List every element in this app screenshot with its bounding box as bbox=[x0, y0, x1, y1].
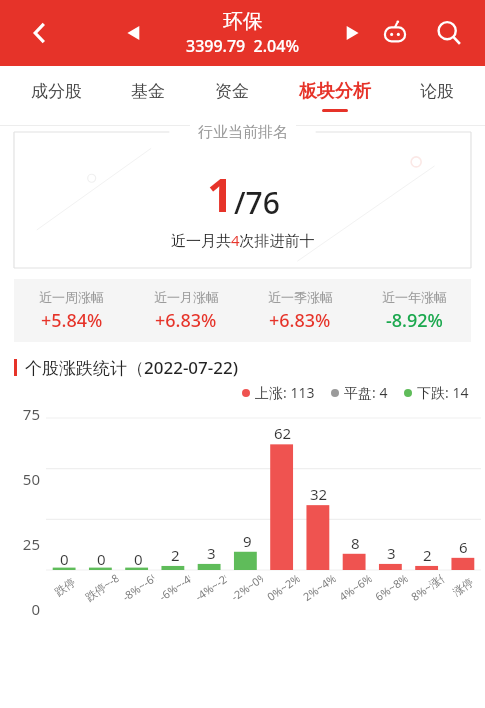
staticText: -2%~0% bbox=[228, 571, 266, 604]
staticText: 个股涨跌统计（2022-07-22) bbox=[25, 356, 239, 379]
staticText: 9 bbox=[243, 531, 252, 551]
staticText: 0 bbox=[6, 599, 40, 619]
staticText: 3399.79 2.04% bbox=[186, 35, 300, 57]
button[interactable]: 近一年涨幅 bbox=[357, 289, 471, 333]
staticText: 32 bbox=[310, 484, 328, 504]
staticText: 2 bbox=[171, 545, 180, 565]
staticText: 环保 bbox=[223, 9, 263, 34]
staticText: 涨停 bbox=[450, 575, 476, 599]
staticText: 62 bbox=[274, 423, 292, 443]
staticText: 跌停~-8% bbox=[82, 571, 121, 604]
button[interactable]: 近一季涨幅 bbox=[243, 289, 357, 333]
staticText: 2 bbox=[423, 545, 432, 565]
staticText: 0%~2% bbox=[264, 571, 302, 604]
staticText: 板块分析 bbox=[299, 80, 371, 103]
staticText: 近一月共4次排进前十 bbox=[171, 230, 315, 250]
staticText: 上涨: 113 bbox=[255, 383, 315, 402]
staticText: -6%~-4% bbox=[156, 571, 194, 604]
staticText: 平盘: 4 bbox=[344, 383, 388, 402]
staticText: -8.92% bbox=[386, 308, 443, 333]
staticText: 近一月涨幅 bbox=[154, 289, 219, 305]
staticText: 0 bbox=[134, 549, 143, 569]
button[interactable]: 近一周涨幅 bbox=[14, 289, 129, 333]
staticText: -8%~-6% bbox=[119, 571, 158, 604]
staticText: 下跌: 14 bbox=[417, 383, 469, 402]
staticText: 1 bbox=[207, 163, 234, 226]
staticText: +5.84% bbox=[41, 308, 103, 333]
button[interactable]: Previous sector bbox=[113, 13, 153, 53]
staticText: +6.83% bbox=[155, 308, 217, 333]
staticText: +6.83% bbox=[269, 308, 331, 333]
staticText: 成分股 bbox=[31, 81, 82, 102]
staticText: 资金 bbox=[215, 81, 249, 102]
button[interactable]: Next sector bbox=[333, 13, 373, 53]
staticText: 50 bbox=[6, 469, 40, 489]
staticText: 2%~4% bbox=[300, 571, 338, 604]
staticText: 6 bbox=[459, 537, 468, 557]
staticText: 4%~6% bbox=[336, 571, 374, 604]
staticText: 论股 bbox=[420, 81, 454, 102]
staticText: 3 bbox=[387, 543, 396, 563]
staticText: -4%~-2% bbox=[192, 571, 230, 604]
staticText: /76 bbox=[234, 182, 280, 223]
staticText: 0 bbox=[97, 549, 106, 569]
staticText: 近一季涨幅 bbox=[268, 289, 333, 305]
staticText: 6%~8% bbox=[372, 571, 410, 604]
button[interactable]: AI assistant bbox=[373, 11, 417, 55]
staticText: 0 bbox=[60, 549, 69, 569]
button[interactable]: 行业当前排名 bbox=[14, 132, 471, 268]
staticText: 行业当前排名 bbox=[198, 123, 288, 142]
staticText: 近一周涨幅 bbox=[39, 289, 104, 305]
button[interactable]: 资金 bbox=[215, 66, 249, 126]
button[interactable]: 成分股 bbox=[31, 66, 82, 126]
staticText: 近一年涨幅 bbox=[382, 289, 447, 305]
staticText: 8%~涨停 bbox=[408, 571, 446, 604]
staticText: 8 bbox=[351, 533, 360, 553]
button[interactable]: 近一月涨幅 bbox=[129, 289, 243, 333]
button[interactable]: Search bbox=[427, 11, 471, 55]
staticText: 基金 bbox=[131, 81, 165, 102]
staticText: 75 bbox=[6, 404, 40, 424]
staticText: 3 bbox=[207, 543, 216, 563]
staticText: 跌停 bbox=[52, 575, 78, 599]
button[interactable]: 论股 bbox=[420, 66, 454, 126]
button[interactable]: 基金 bbox=[131, 66, 165, 126]
staticText: 25 bbox=[6, 534, 40, 554]
button[interactable]: Back bbox=[18, 11, 62, 55]
button[interactable]: 板块分析 bbox=[299, 66, 371, 126]
